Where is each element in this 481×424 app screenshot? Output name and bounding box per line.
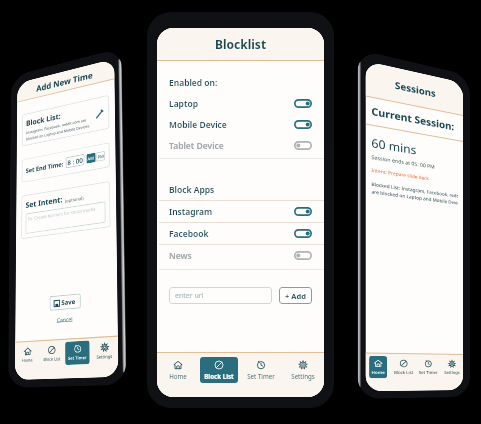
staticText: Set Timer (247, 372, 275, 380)
staticText: Enabled on: (169, 77, 218, 89)
staticText: 60 mins (371, 134, 417, 158)
button[interactable]: Tablet Device (157, 135, 324, 156)
staticText: Mobile Device (169, 119, 227, 131)
other: Set Timer (424, 359, 432, 368)
button[interactable]: Home (19, 343, 35, 367)
staticText: Block List (43, 356, 60, 363)
other: Set Timer (73, 344, 82, 353)
staticText: Block List: (26, 110, 61, 128)
button[interactable]: News (157, 245, 324, 266)
staticText: (optional) (65, 195, 84, 204)
staticText: Facebook (169, 228, 209, 240)
staticText: Cancel (57, 315, 73, 323)
other: Set Timer (256, 360, 266, 370)
button[interactable]: enter url (169, 287, 272, 304)
staticText: Settings (96, 354, 112, 361)
staticText: Settings (444, 370, 460, 375)
button[interactable]: Block Apps (157, 179, 324, 200)
staticText: Save (61, 297, 76, 307)
button[interactable]: AM (86, 152, 96, 164)
other: Block List (48, 345, 56, 355)
staticText: Instagram, Facebook, reddit.com are bloc… (26, 117, 91, 141)
staticText: 8 : 00 (67, 156, 84, 167)
staticText: Blocklist (215, 36, 267, 52)
button[interactable]: Cancel (57, 315, 73, 323)
other: Home (374, 359, 383, 368)
staticText: AM (87, 155, 95, 162)
button[interactable]: Home (369, 356, 387, 378)
staticText: Home (371, 370, 385, 375)
staticText: Blocked List: Instagram, Facebook, reddi… (371, 180, 458, 207)
staticText: Block Apps (169, 184, 215, 196)
other: Block List (399, 359, 408, 368)
staticText: Instagram (169, 206, 213, 218)
other: Toggle (294, 229, 312, 238)
staticText: Home (22, 357, 33, 364)
button[interactable]: Block List (200, 357, 238, 383)
staticText: enter url (175, 291, 204, 301)
button[interactable]: Laptop (157, 93, 324, 114)
other: Toggle (294, 207, 312, 216)
staticText: Set Timer (68, 355, 87, 362)
staticText: Set Timer (419, 370, 438, 375)
staticText: Set End Time: (26, 159, 64, 175)
staticText: PM (97, 153, 104, 160)
staticText: Tablet Device (169, 140, 224, 152)
other: Toggle (294, 251, 312, 260)
button[interactable]: Set Timer (417, 356, 440, 378)
button[interactable]: Enabled on: (157, 72, 324, 93)
button[interactable]: Save (50, 293, 81, 311)
button[interactable]: Settings (287, 357, 319, 383)
staticText: Current Session: (371, 104, 455, 133)
button[interactable]: Facebook (157, 223, 324, 244)
other: Toggle (294, 120, 312, 129)
button[interactable]: Instagram (157, 201, 324, 222)
staticText: Intent: Prepare slide deck (371, 166, 429, 181)
button[interactable]: + Add (279, 287, 312, 304)
staticText: Home (169, 372, 187, 380)
staticText: Settings (291, 372, 315, 380)
staticText: Add New Time (36, 69, 93, 94)
button[interactable]: Edit (94, 108, 105, 120)
other: Toggle (294, 99, 312, 108)
staticText: Sessions (395, 78, 437, 99)
button[interactable]: Set Timer (243, 357, 279, 383)
staticText: News (169, 250, 192, 262)
staticText: + Add (285, 291, 306, 301)
staticText: Block List (204, 372, 234, 380)
button[interactable]: Home (165, 357, 191, 383)
button[interactable]: PM (96, 151, 105, 162)
button[interactable]: Set Timer (65, 340, 90, 365)
button[interactable]: Block List (392, 356, 416, 378)
staticText: Laptop (169, 98, 198, 110)
button[interactable]: Settings (442, 357, 462, 378)
other: Home (24, 347, 32, 356)
other: Home (173, 360, 183, 370)
other: Settings (298, 360, 308, 370)
other: Block List (214, 360, 224, 370)
button[interactable]: 8 : 00 (66, 154, 85, 168)
other: Settings (100, 342, 109, 352)
button[interactable]: Mobile Device (157, 114, 324, 135)
staticText: Ex. Create barriers for social media (28, 205, 96, 221)
button[interactable]: Settings (93, 339, 115, 364)
button[interactable]: Ex. Create barriers for social media (25, 201, 106, 234)
other: Settings (448, 360, 456, 368)
button[interactable]: Block List (40, 342, 63, 366)
staticText: Set Intent: (25, 193, 63, 210)
staticText: Block List (394, 370, 413, 375)
other: Toggle (294, 141, 312, 150)
staticText: Session ends at 05: 00 PM (371, 154, 436, 171)
